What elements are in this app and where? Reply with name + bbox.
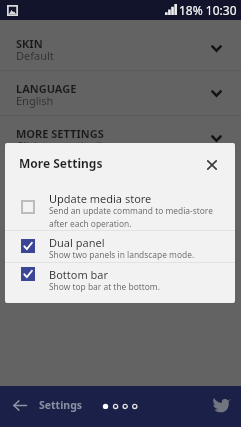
staticText: Update media store: [49, 191, 152, 206]
staticText: Settings: [39, 398, 83, 412]
button[interactable]: MORE SETTINGS: [0, 116, 241, 160]
staticText: Show two panels in landscape mode.: [49, 249, 195, 260]
staticText: More Settings: [19, 155, 103, 171]
staticText: Dual panel: [49, 235, 105, 250]
button[interactable]: Close dialog: [201, 154, 222, 175]
staticText: MORE SETTINGS: [16, 126, 104, 141]
staticText: Show top bar at the bottom.: [49, 281, 160, 292]
staticText: LANGUAGE: [16, 81, 77, 96]
staticText: Send an update command to media-store af…: [49, 205, 213, 230]
button[interactable]: Bottom bar: [5, 263, 235, 303]
staticText: Default: [16, 48, 54, 63]
button[interactable]: SKIN: [0, 26, 241, 70]
staticText: Click to see the list: [16, 138, 112, 153]
button[interactable]: LANGUAGE: [0, 71, 241, 115]
button[interactable]: Update media store: [5, 177, 235, 230]
staticText: 18% 10:30: [179, 2, 237, 18]
button[interactable]: Twitter: [209, 392, 235, 418]
staticText: English: [16, 93, 54, 108]
staticText: SKIN: [16, 36, 43, 51]
button[interactable]: Dual panel: [5, 231, 235, 262]
staticText: Bottom bar: [49, 267, 109, 282]
button[interactable]: Back: [6, 392, 33, 419]
